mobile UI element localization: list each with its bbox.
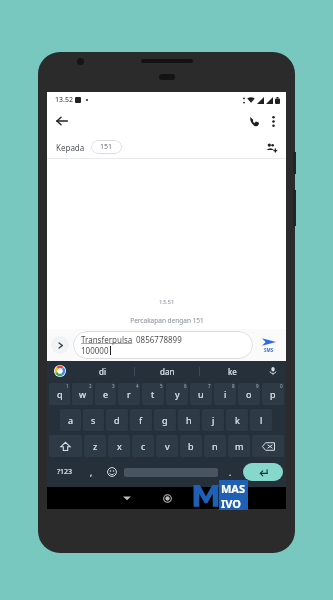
button[interactable]: v — [156, 435, 178, 457]
staticText: e — [103, 388, 109, 400]
button[interactable]: Shift — [49, 435, 82, 457]
staticText: Kepada — [56, 142, 85, 153]
button[interactable]: e — [95, 383, 116, 405]
button[interactable]: Backspace — [252, 435, 284, 457]
staticText: Percakapan dengan 151 — [130, 316, 204, 325]
button[interactable]: a — [60, 409, 81, 431]
staticText: ke — [228, 366, 237, 377]
button[interactable]: s — [83, 409, 104, 431]
staticText: x — [117, 440, 122, 452]
button[interactable]: Expand — [51, 336, 69, 354]
staticText: 5 — [160, 383, 163, 389]
button[interactable]: . — [220, 459, 241, 485]
staticText: t — [151, 388, 155, 400]
button[interactable]: More options — [264, 112, 282, 130]
staticText: n — [212, 440, 218, 452]
button[interactable]: Add people — [262, 138, 280, 156]
button[interactable]: x — [108, 435, 130, 457]
staticText: g — [162, 414, 168, 426]
staticText: 8 — [232, 383, 235, 389]
staticText: 13.51 — [159, 298, 175, 306]
staticText: d — [114, 414, 120, 426]
button[interactable]: ke — [200, 361, 264, 381]
staticText: 100000 — [81, 345, 109, 356]
staticText: 3 — [112, 383, 115, 389]
button[interactable]: 151 — [91, 140, 122, 154]
staticText: c — [141, 440, 146, 452]
staticText: di — [99, 366, 106, 377]
staticText: 0 — [280, 383, 283, 389]
button[interactable]: u — [190, 383, 212, 405]
button[interactable]: z — [84, 435, 106, 457]
staticText: u — [198, 388, 204, 400]
staticText: b — [188, 440, 194, 452]
staticText: w — [79, 388, 87, 400]
button[interactable]: f — [130, 409, 152, 431]
staticText: h — [186, 414, 192, 426]
button[interactable]: Back — [52, 111, 72, 131]
staticText: SMS — [264, 347, 274, 353]
button[interactable]: q — [49, 383, 70, 405]
staticText: v — [165, 440, 170, 452]
staticText: s — [91, 414, 96, 426]
staticText: k — [235, 414, 240, 426]
button[interactable]: o — [238, 383, 260, 405]
button[interactable]: d — [106, 409, 128, 431]
button[interactable]: di — [71, 361, 134, 381]
button[interactable]: y — [166, 383, 188, 405]
staticText: 0856778899 — [136, 334, 182, 345]
button[interactable]: m — [228, 435, 250, 457]
button[interactable]: t — [142, 383, 164, 405]
button[interactable]: Emoji — [101, 459, 122, 485]
button[interactable]: g — [154, 409, 176, 431]
button[interactable]: , — [82, 459, 101, 485]
staticText: . — [229, 467, 232, 478]
staticText: y — [175, 388, 180, 400]
button[interactable]: Enter — [243, 463, 283, 481]
staticText: q — [57, 388, 63, 400]
button[interactable]: h — [178, 409, 200, 431]
button[interactable]: p — [262, 383, 284, 405]
button[interactable]: b — [180, 435, 202, 457]
button[interactable]: dan — [135, 361, 199, 381]
button[interactable]: Send SMS — [256, 337, 282, 353]
staticText: 4 — [136, 383, 139, 389]
button[interactable]: Google — [54, 365, 66, 377]
button[interactable]: Back — [118, 489, 136, 507]
button[interactable]: Home — [158, 489, 176, 507]
staticText: MAS — [221, 481, 246, 496]
staticText: j — [212, 414, 215, 426]
button[interactable]: r — [118, 383, 140, 405]
staticText: p — [270, 388, 276, 400]
staticText: o — [246, 388, 252, 400]
staticText: , — [90, 467, 93, 478]
staticText: Transferpulsa — [81, 334, 133, 345]
staticText: 151 — [100, 142, 113, 152]
staticText: 9 — [256, 383, 259, 389]
staticText: 2 — [89, 383, 92, 389]
button[interactable]: n — [204, 435, 226, 457]
staticText: 1 — [66, 383, 69, 389]
button[interactable]: l — [250, 409, 272, 431]
staticText: r — [127, 388, 131, 400]
staticText: f — [139, 414, 143, 426]
staticText: z — [93, 440, 98, 452]
button[interactable]: i — [214, 383, 236, 405]
button[interactable]: j — [202, 409, 224, 431]
button[interactable]: c — [132, 435, 154, 457]
staticText: l — [260, 414, 263, 426]
staticText: a — [68, 414, 74, 426]
button[interactable]: ?123 — [48, 459, 82, 485]
staticText: 6 — [184, 383, 187, 389]
button[interactable]: w — [72, 383, 93, 405]
staticText: m — [235, 440, 244, 452]
staticText: ?123 — [57, 467, 73, 477]
staticText: i — [224, 388, 227, 400]
staticText: 7 — [208, 383, 211, 389]
staticText: dan — [160, 366, 175, 377]
button[interactable]: Transferpulsa — [73, 331, 253, 359]
button[interactable]: Voice input — [266, 364, 280, 378]
button[interactable]: k — [226, 409, 248, 431]
button[interactable]: Call — [244, 111, 264, 131]
